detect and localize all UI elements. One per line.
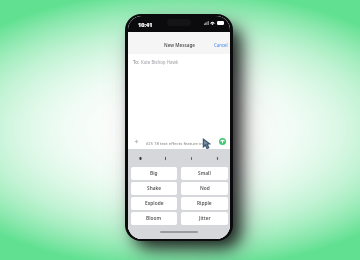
staticText: Big [150, 170, 158, 177]
button[interactable]: Ripple [181, 197, 228, 210]
button[interactable]: Cancel [212, 40, 230, 50]
button[interactable]: Italic [178, 149, 204, 167]
staticText: iOS 18 text effects feature in [146, 140, 219, 146]
button[interactable]: Text style [128, 149, 153, 167]
staticText: Explode [145, 200, 164, 207]
staticText: New Message [164, 42, 195, 48]
staticText: Kate Bishop Hawk [141, 59, 179, 65]
button[interactable]: Big [131, 167, 177, 180]
button[interactable]: Shake [131, 182, 177, 195]
staticText: To: [133, 59, 139, 65]
button[interactable]: Send [219, 138, 226, 145]
staticText: 10:41 [138, 21, 153, 29]
button[interactable]: Bloom [131, 212, 177, 225]
button[interactable]: Nod [181, 182, 228, 195]
button[interactable]: Explode [131, 197, 177, 210]
button[interactable]: Bold [153, 149, 178, 167]
button[interactable]: Small [181, 167, 228, 180]
staticText: Bloom [146, 215, 162, 222]
button[interactable]: Jitter [181, 212, 228, 225]
button[interactable]: More effects [204, 149, 230, 167]
staticText: Nod [200, 185, 210, 192]
staticText: Small [198, 170, 211, 177]
button[interactable]: Apps [132, 137, 141, 146]
staticText: Cancel [214, 42, 228, 48]
staticText: Jitter [199, 215, 211, 222]
staticText: Ripple [197, 200, 212, 207]
staticText: Shake [147, 185, 162, 192]
